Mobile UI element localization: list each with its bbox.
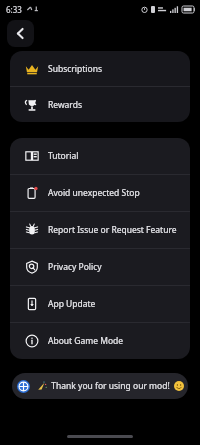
button[interactable]: Report Issue or Request Feature bbox=[10, 212, 190, 248]
staticText: Report Issue or Request Feature bbox=[48, 224, 177, 236]
staticText: 6:33 bbox=[6, 4, 22, 15]
staticText: Rewards bbox=[48, 99, 83, 111]
button[interactable]: Back bbox=[7, 20, 34, 47]
staticText: Privacy Policy bbox=[48, 261, 102, 273]
button[interactable]: Tutorial bbox=[10, 138, 190, 174]
staticText: Avoid unexpected Stop bbox=[48, 187, 140, 199]
staticText: Tutorial bbox=[48, 150, 79, 162]
button[interactable]: App Update bbox=[10, 286, 190, 322]
button[interactable]: Thank you for using our mod! bbox=[12, 373, 188, 399]
button[interactable]: Avoid unexpected Stop bbox=[10, 175, 190, 211]
button[interactable]: Subscriptions bbox=[10, 51, 190, 86]
staticText: Thank you for using our mod! bbox=[51, 380, 170, 392]
staticText: App Update bbox=[48, 298, 96, 310]
button[interactable]: Rewards bbox=[10, 87, 190, 122]
button[interactable]: About Game Mode bbox=[10, 323, 190, 359]
staticText: Subscriptions bbox=[48, 63, 102, 75]
staticText: About Game Mode bbox=[48, 335, 124, 347]
button[interactable]: Privacy Policy bbox=[10, 249, 190, 285]
